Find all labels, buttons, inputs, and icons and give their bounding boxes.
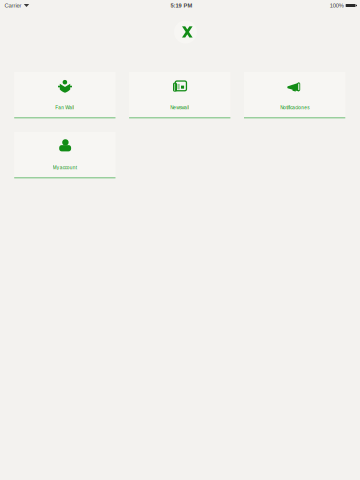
staticText: Notificaciones (280, 105, 309, 110)
staticText: My account (53, 165, 77, 170)
button[interactable]: Fan Wall (14, 72, 115, 119)
button[interactable]: My account (14, 132, 115, 179)
staticText: Fan Wall (55, 105, 74, 110)
staticText: 5:19 PM (170, 2, 192, 9)
button[interactable]: Home (174, 20, 197, 43)
staticText: Newswall (170, 105, 189, 110)
staticText: Carrier (4, 2, 21, 9)
staticText: 100% (330, 2, 344, 9)
button[interactable]: Notificaciones (244, 72, 345, 119)
button[interactable]: Newswall (129, 72, 230, 119)
